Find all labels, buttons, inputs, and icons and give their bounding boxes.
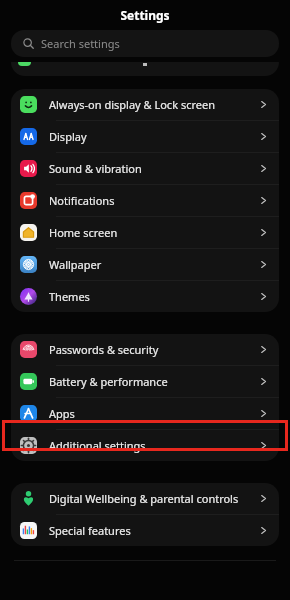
button[interactable]: Home screen <box>11 217 279 248</box>
staticText: Apps <box>49 406 259 421</box>
staticText: Notifications <box>49 193 259 208</box>
button[interactable]: Sound & vibration <box>11 153 279 184</box>
staticText: Settings <box>120 7 170 23</box>
button[interactable]: Apps <box>11 398 279 429</box>
staticText: Sound & vibration <box>49 161 259 176</box>
button[interactable]: Themes <box>11 281 279 312</box>
button[interactable]: Wallpaper <box>11 249 279 280</box>
staticText: Home screen <box>49 225 259 240</box>
staticText: Always-on display & Lock screen <box>49 97 259 112</box>
staticText: Themes <box>49 289 259 304</box>
button[interactable]: Always-on display & Lock screen <box>11 89 279 120</box>
staticText: Battery & performance <box>49 374 259 389</box>
button[interactable]: Digital Wellbeing & parental controls <box>11 483 279 514</box>
button[interactable]: Display <box>11 121 279 152</box>
button[interactable]: Special features <box>11 515 279 546</box>
staticText: Digital Wellbeing & parental controls <box>49 491 259 506</box>
staticText: Wallpaper <box>49 257 259 272</box>
staticText: Display <box>49 129 259 144</box>
staticText: Special features <box>49 523 259 538</box>
button[interactable]: Additional settings <box>11 430 279 461</box>
button[interactable]: Passwords & security <box>11 334 279 365</box>
button[interactable]: Search settings <box>11 30 279 57</box>
staticText: Passwords & security <box>49 342 259 357</box>
button[interactable]: Battery & performance <box>11 366 279 397</box>
staticText: Additional settings <box>49 438 259 453</box>
staticText: Search settings <box>41 36 120 51</box>
button[interactable]: Notifications <box>11 185 279 216</box>
button[interactable] <box>11 62 279 76</box>
